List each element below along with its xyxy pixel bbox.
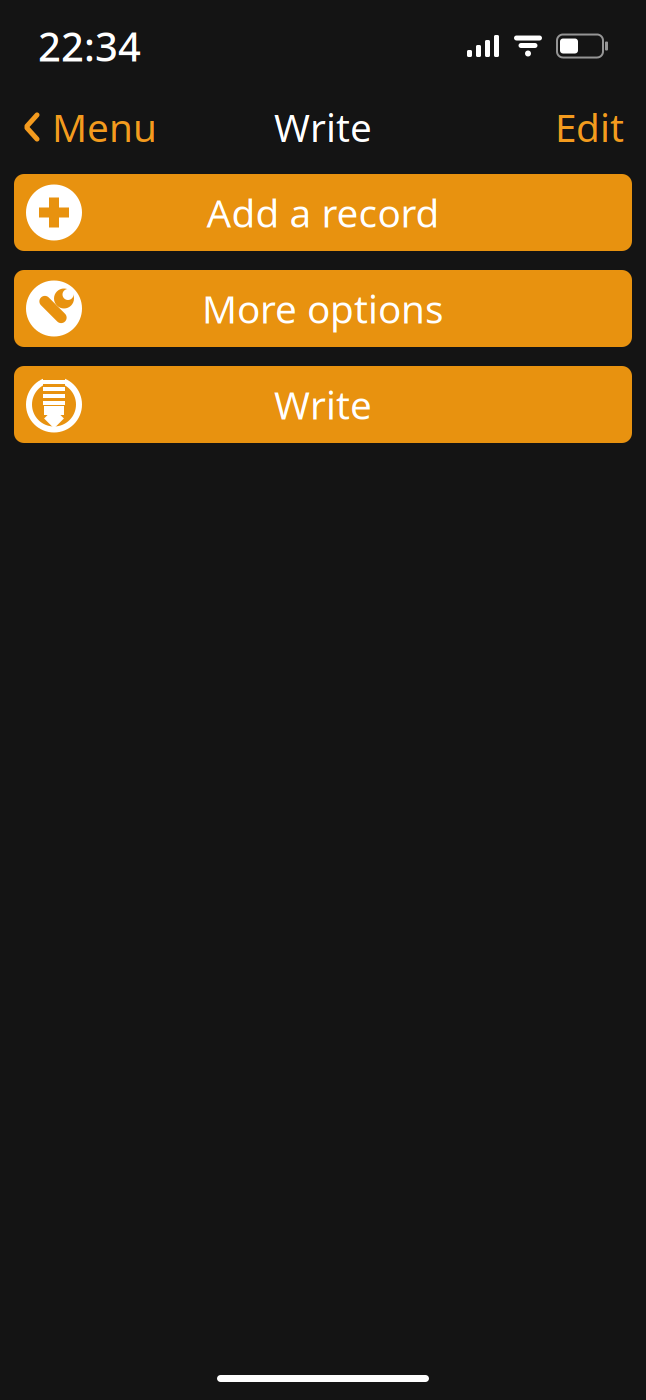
button[interactable]: Write	[14, 366, 632, 443]
button[interactable]: More options	[14, 270, 632, 347]
button[interactable]: Menu	[6, 93, 173, 161]
button[interactable]: Add a record	[14, 174, 632, 251]
staticText: 22:34	[38, 19, 141, 72]
staticText: More options	[202, 283, 444, 334]
staticText: Add a record	[206, 187, 439, 238]
staticText: Menu	[52, 101, 157, 153]
staticText: Write	[274, 379, 372, 430]
staticText: Write	[274, 101, 372, 153]
button[interactable]: Edit	[539, 93, 640, 161]
staticText: Edit	[555, 101, 624, 153]
